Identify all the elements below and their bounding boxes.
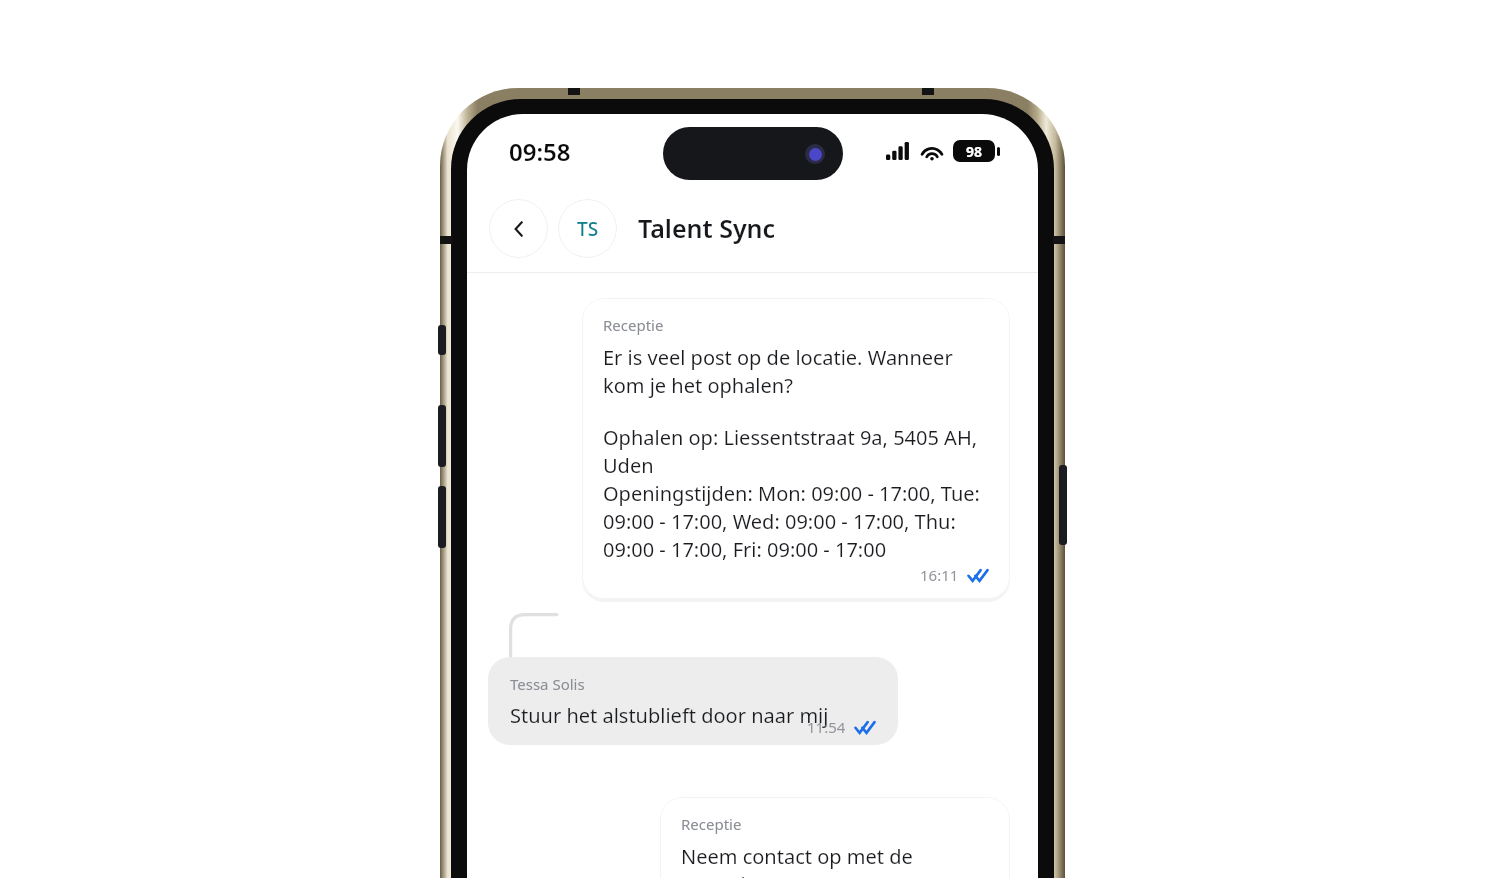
staticText: Tessa Solis (510, 674, 585, 694)
staticText: 11:54 (807, 717, 846, 737)
staticText: Receptie (681, 814, 742, 834)
button[interactable]: Receptie (660, 797, 1010, 878)
staticText: Receptie (603, 315, 664, 335)
staticText: TS (577, 216, 599, 242)
staticText: Er is veel post op de locatie. Wanneer k… (603, 344, 991, 399)
button[interactable]: TS (558, 199, 617, 258)
button[interactable]: Back (489, 199, 548, 258)
staticText: Ophalen op: Liessentstraat 9a, 5405 AH, … (603, 424, 991, 563)
staticText: 16:11 (920, 565, 959, 585)
staticText: Stuur het alstublieft door naar mij (510, 702, 829, 729)
button[interactable]: Talent Sync (638, 211, 776, 245)
staticText: Neem contact op met de receptie. (681, 843, 991, 878)
staticText: 98 (966, 142, 983, 161)
button[interactable]: Receptie (582, 298, 1010, 599)
button[interactable]: Tessa Solis (488, 657, 898, 745)
staticText: 09:58 (509, 135, 571, 168)
